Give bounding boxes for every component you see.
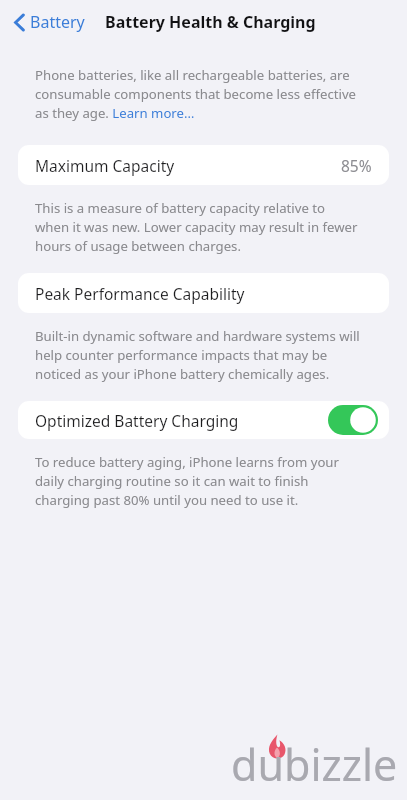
staticText: This is a measure of battery capacity re…	[35, 199, 362, 255]
button[interactable]: Optimized Battery Charging	[18, 401, 389, 439]
staticText: Battery Health & Charging	[105, 11, 316, 33]
staticText: Phone batteries, like all rechargeable b…	[35, 66, 362, 122]
staticText: Maximum Capacity	[35, 155, 175, 176]
staticText: 85%	[341, 155, 372, 176]
staticText: Optimized Battery Charging	[35, 410, 239, 431]
staticText: To reduce battery aging, iPhone learns f…	[35, 453, 362, 509]
staticText: Peak Performance Capability	[35, 283, 245, 304]
button[interactable]: Optimized Battery Charging toggle	[328, 405, 378, 435]
button[interactable]: Maximum Capacity	[18, 145, 389, 185]
staticText: dubizzle	[231, 735, 398, 794]
staticText: Built-in dynamic software and hardware s…	[35, 327, 362, 383]
button[interactable]: Peak Performance Capability	[18, 273, 389, 313]
button[interactable]: Battery	[10, 7, 89, 37]
staticText: Battery	[30, 11, 85, 33]
